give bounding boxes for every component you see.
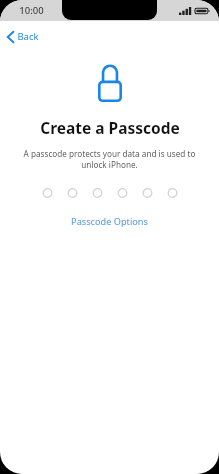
staticText: A passcode protects your data and is use… — [22, 148, 197, 171]
staticText: Passcode Options — [71, 215, 148, 228]
button[interactable]: Passcode Options — [61, 212, 158, 231]
button[interactable]: Back — [0, 28, 47, 45]
staticText: 10:00 — [19, 4, 44, 17]
staticText: Create a Passcode — [40, 117, 180, 138]
staticText: Back — [17, 30, 39, 43]
